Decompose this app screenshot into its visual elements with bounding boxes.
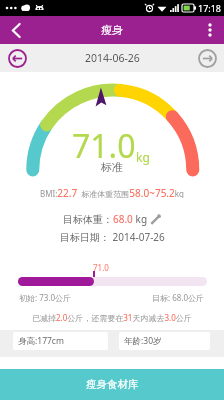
- staticText: 初始: 73.0公斤: [19, 292, 72, 303]
- staticText: 身高:177cm: [18, 335, 64, 347]
- staticText: kg: [133, 212, 150, 226]
- button[interactable]: More options: [196, 16, 224, 44]
- staticText: 瘦身食材库: [86, 378, 139, 391]
- button[interactable]: Previous day: [5, 46, 29, 70]
- button[interactable]: Back: [0, 16, 32, 44]
- staticText: 71.0: [72, 124, 136, 168]
- button[interactable]: 目标体重：: [63, 212, 161, 226]
- staticText: 标准: [101, 160, 123, 174]
- button[interactable]: 年龄:30岁: [119, 332, 210, 350]
- staticText: 已减掉2.0公斤，还需要在31天内减去3.0公斤: [32, 312, 192, 323]
- button[interactable]: 瘦身食材库: [0, 369, 224, 400]
- staticText: BMI:22.7 标准体重范围58.0~75.2kg: [40, 186, 184, 198]
- staticText: 瘦身: [101, 23, 123, 37]
- staticText: 71.0: [93, 262, 109, 273]
- staticText: kg: [136, 149, 150, 165]
- button[interactable]: 身高:177cm: [13, 332, 108, 350]
- staticText: 年龄:30岁: [124, 335, 162, 347]
- staticText: 目标体重：: [63, 213, 113, 226]
- staticText: 目标: 68.0公斤: [152, 292, 205, 303]
- staticText: 17:18: [198, 2, 222, 14]
- button[interactable]: Next day: [195, 46, 219, 70]
- staticText: 68.0: [113, 212, 133, 226]
- staticText: 目标日期： 2014-07-26: [60, 230, 165, 244]
- staticText: 2014-06-26: [85, 51, 140, 65]
